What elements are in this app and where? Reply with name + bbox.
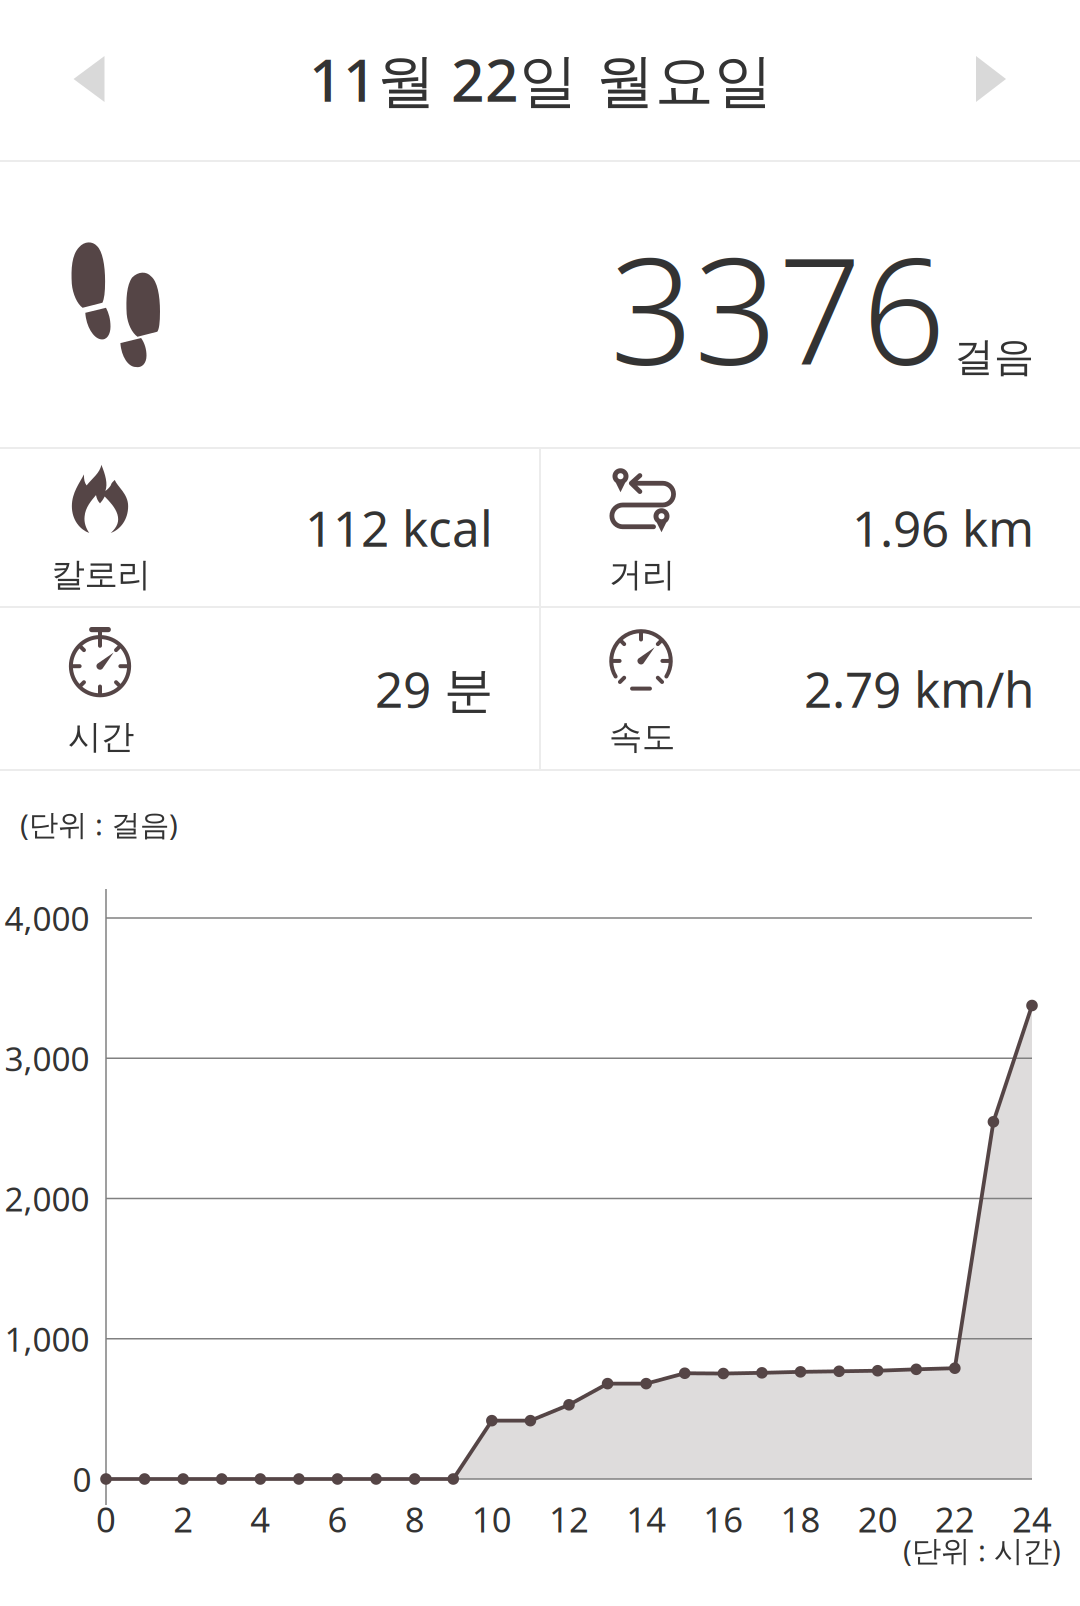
button[interactable]: 거리: [541, 449, 1080, 606]
staticText: 8: [405, 1496, 425, 1542]
staticText: 6: [327, 1496, 347, 1542]
staticText: 4: [250, 1496, 270, 1542]
staticText: 2,000: [4, 1176, 89, 1221]
staticText: 시간: [68, 716, 134, 757]
staticText: 속도: [609, 716, 675, 757]
staticText: 14: [626, 1496, 666, 1542]
button[interactable]: 칼로리: [0, 449, 539, 606]
staticText: 16: [703, 1496, 743, 1542]
button[interactable]: Next day: [926, 14, 1056, 144]
staticText: 20: [858, 1496, 898, 1542]
staticText: 18: [780, 1496, 820, 1542]
staticText: 걸음: [954, 332, 1034, 381]
staticText: 112 kcal: [305, 495, 493, 560]
staticText: 1.96 km: [852, 495, 1034, 560]
staticText: 2: [173, 1496, 193, 1542]
button[interactable]: 속도: [541, 608, 1080, 769]
staticText: 11월 22일 월요일: [309, 40, 773, 118]
staticText: 1,000: [4, 1317, 89, 1361]
staticText: 0: [72, 1457, 91, 1501]
staticText: 29 분: [375, 656, 493, 721]
staticText: 칼로리: [51, 554, 150, 595]
staticText: 24: [1012, 1496, 1052, 1542]
staticText: 3,000: [4, 1036, 89, 1080]
button[interactable]: Previous day: [24, 14, 154, 144]
staticText: 12: [549, 1496, 589, 1542]
staticText: (단위 : 걸음): [20, 804, 178, 843]
staticText: 22: [935, 1496, 975, 1542]
staticText: 거리: [609, 554, 675, 595]
staticText: 0: [96, 1496, 116, 1542]
staticText: 10: [472, 1496, 512, 1542]
staticText: 2.79 km/h: [804, 656, 1034, 721]
staticText: 4,000: [4, 896, 89, 940]
staticText: 3376: [610, 211, 946, 405]
staticText: (단위 : 시간): [903, 1530, 1061, 1569]
button[interactable]: 시간: [0, 608, 539, 769]
